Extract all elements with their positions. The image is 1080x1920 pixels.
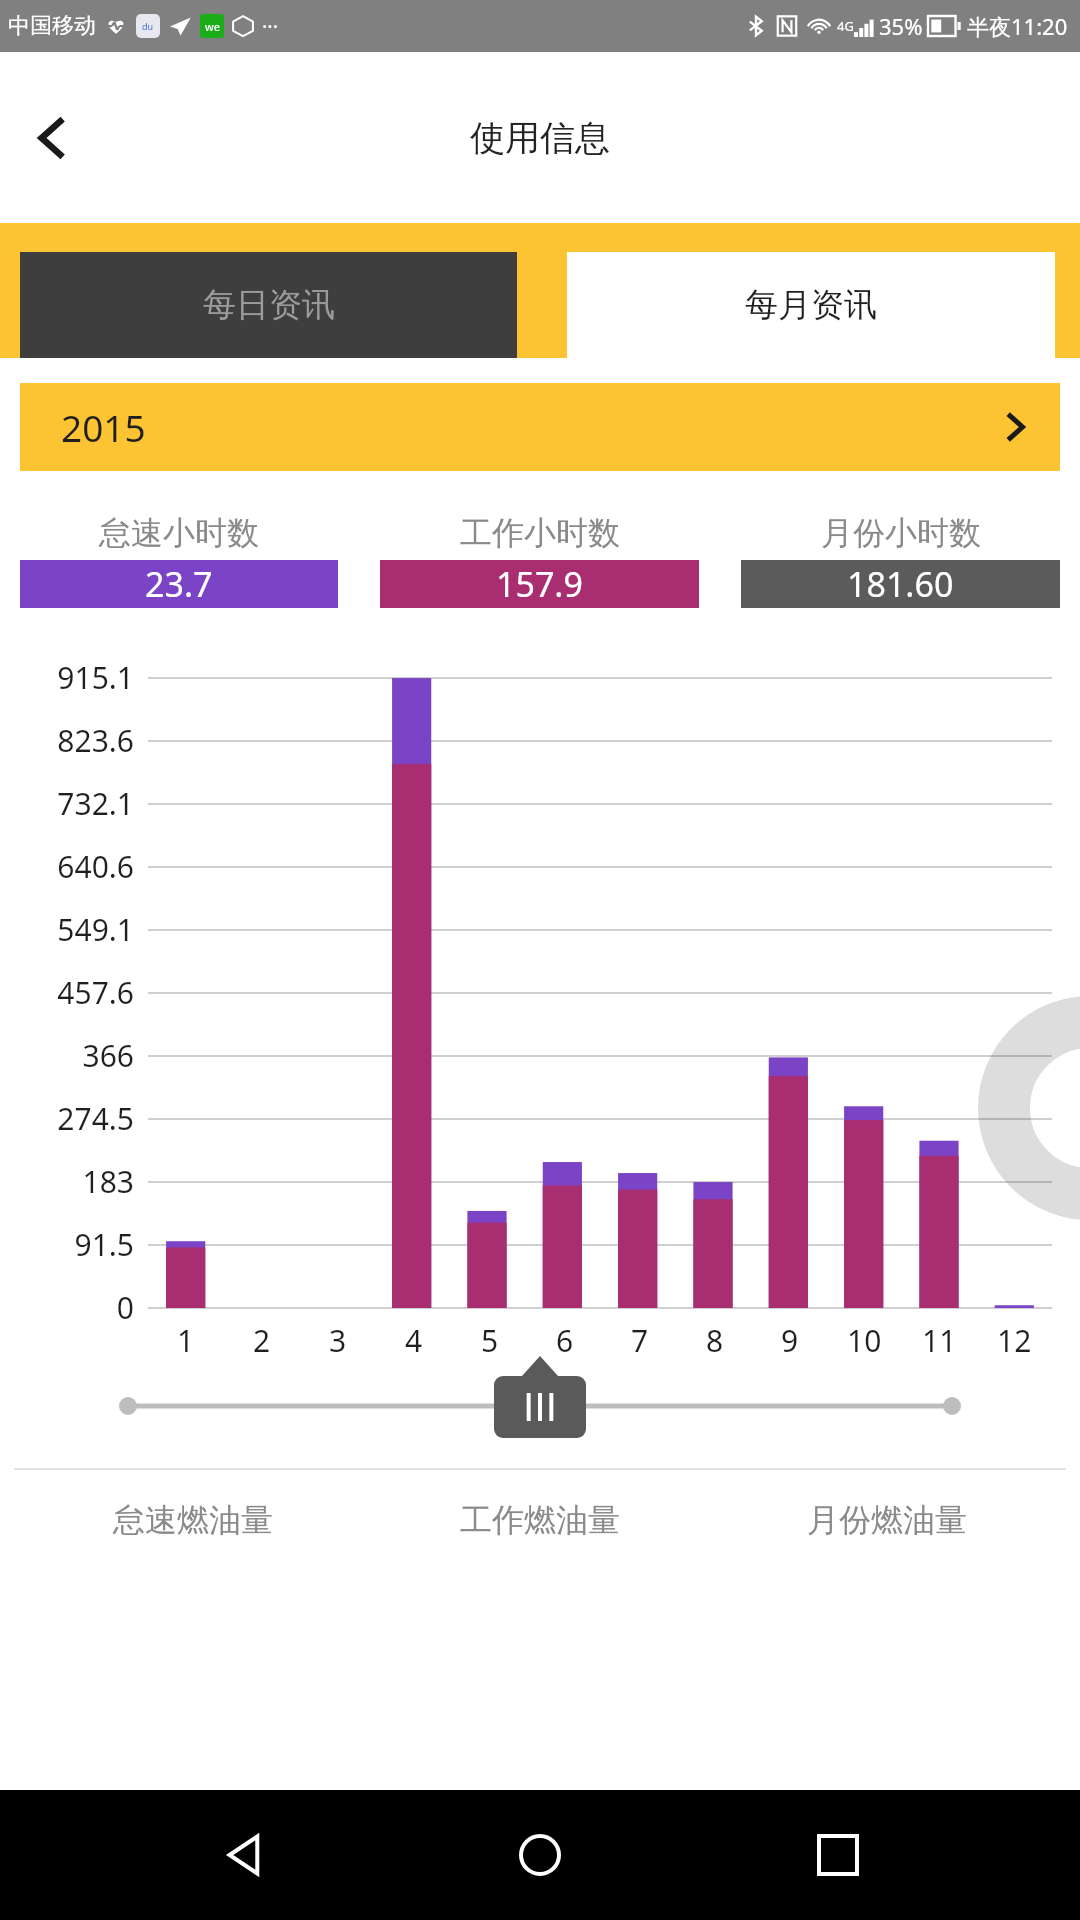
staticText: 915.1 bbox=[12, 657, 134, 698]
button[interactable]: 月份小时数 bbox=[741, 513, 1060, 608]
staticText: 工作燃油量 bbox=[460, 1500, 620, 1540]
staticText: 工作小时数 bbox=[460, 513, 620, 553]
button[interactable]: 每日资讯 bbox=[20, 252, 517, 358]
staticText: 怠速小时数 bbox=[99, 513, 259, 553]
staticText: ··· bbox=[262, 13, 279, 40]
staticText: 月份小时数 bbox=[821, 513, 981, 553]
staticText: 9 bbox=[781, 1320, 799, 1361]
staticText: 91.5 bbox=[12, 1224, 134, 1265]
staticText: 549.1 bbox=[12, 909, 134, 950]
button[interactable]: 每月资讯 bbox=[567, 252, 1055, 358]
staticText: 1 bbox=[177, 1320, 195, 1361]
staticText: 每月资讯 bbox=[745, 284, 877, 326]
staticText: 半夜11:20 bbox=[967, 11, 1068, 41]
staticText: 640.6 bbox=[12, 846, 134, 887]
staticText: 0 bbox=[12, 1287, 134, 1328]
staticText: 使用信息 bbox=[470, 116, 610, 160]
staticText: 12 bbox=[997, 1320, 1032, 1361]
staticText: 7 bbox=[631, 1320, 649, 1361]
staticText: 怠速燃油量 bbox=[113, 1500, 273, 1540]
staticText: 457.6 bbox=[12, 972, 134, 1013]
button[interactable]: Home bbox=[485, 1800, 595, 1910]
staticText: 2 bbox=[253, 1320, 271, 1361]
button[interactable]: Back bbox=[188, 1800, 298, 1910]
staticText: 2015 bbox=[61, 402, 146, 452]
button[interactable]: Scrub handle bbox=[494, 1376, 586, 1438]
staticText: 35% bbox=[879, 11, 923, 41]
staticText: 11 bbox=[922, 1320, 957, 1361]
staticText: we bbox=[205, 19, 220, 34]
staticText: 5 bbox=[481, 1320, 499, 1361]
staticText: du bbox=[142, 20, 154, 32]
staticText: 732.1 bbox=[12, 783, 134, 824]
staticText: 274.5 bbox=[12, 1098, 134, 1139]
staticText: 6 bbox=[556, 1320, 574, 1361]
button[interactable]: 工作小时数 bbox=[380, 513, 699, 608]
staticText: 823.6 bbox=[12, 720, 134, 761]
staticText: 183 bbox=[12, 1161, 134, 1202]
staticText: 4G bbox=[837, 17, 854, 35]
button[interactable]: Recents bbox=[783, 1800, 893, 1910]
staticText: 23.7 bbox=[145, 561, 213, 607]
staticText: 月份燃油量 bbox=[807, 1500, 967, 1540]
staticText: 157.9 bbox=[496, 561, 583, 607]
staticText: 8 bbox=[706, 1320, 724, 1361]
button[interactable]: Back bbox=[14, 99, 92, 177]
staticText: 10 bbox=[847, 1320, 882, 1361]
staticText: 3 bbox=[329, 1320, 347, 1361]
staticText: 每日资讯 bbox=[203, 284, 335, 326]
staticText: 366 bbox=[12, 1035, 134, 1076]
staticText: 181.60 bbox=[847, 561, 954, 607]
staticText: 中国移动 bbox=[8, 12, 96, 40]
button[interactable]: 2015 bbox=[20, 383, 1060, 471]
button[interactable]: 怠速小时数 bbox=[20, 513, 338, 608]
staticText: 4 bbox=[405, 1320, 423, 1361]
